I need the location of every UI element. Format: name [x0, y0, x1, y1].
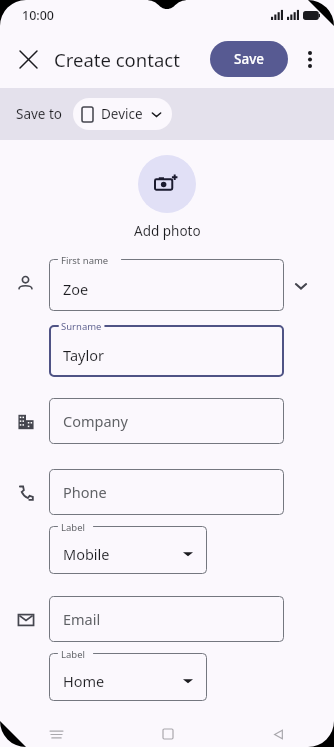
staticText: Company	[63, 411, 128, 431]
staticText: First name	[61, 254, 109, 267]
button[interactable]: Close	[8, 39, 48, 79]
button[interactable]: Expand name fields	[284, 269, 318, 303]
button[interactable]: Recents	[0, 721, 112, 747]
staticText: Save to	[16, 105, 63, 123]
button[interactable]: Add photo	[138, 155, 196, 213]
button[interactable]: Label	[49, 526, 207, 574]
button[interactable]: Phone	[49, 469, 284, 515]
staticText: Taylor	[63, 345, 104, 365]
button[interactable]: Device	[73, 98, 172, 130]
staticText: Mobile	[63, 544, 110, 564]
staticText: Surname	[61, 320, 102, 333]
staticText: Create contact	[54, 47, 180, 72]
staticText: Save	[234, 50, 265, 68]
staticText: Label	[61, 648, 85, 661]
button[interactable]: Home	[112, 721, 223, 747]
staticText: Email	[63, 609, 101, 629]
button[interactable]: First name	[49, 259, 284, 311]
staticText: Label	[61, 521, 85, 534]
button[interactable]: Label	[49, 653, 207, 701]
staticText: Home	[63, 671, 105, 691]
button[interactable]: More options	[290, 39, 330, 79]
staticText: Device	[101, 105, 143, 123]
staticText: 10:00	[22, 7, 55, 24]
button[interactable]: Email	[49, 596, 284, 642]
button[interactable]: Back	[223, 721, 334, 747]
button[interactable]: Save	[210, 41, 288, 77]
button[interactable]: Surname	[49, 325, 284, 377]
staticText: Zoe	[63, 279, 89, 299]
staticText: Add photo	[134, 222, 201, 240]
staticText: Phone	[63, 482, 107, 502]
button[interactable]: Company	[49, 398, 284, 444]
